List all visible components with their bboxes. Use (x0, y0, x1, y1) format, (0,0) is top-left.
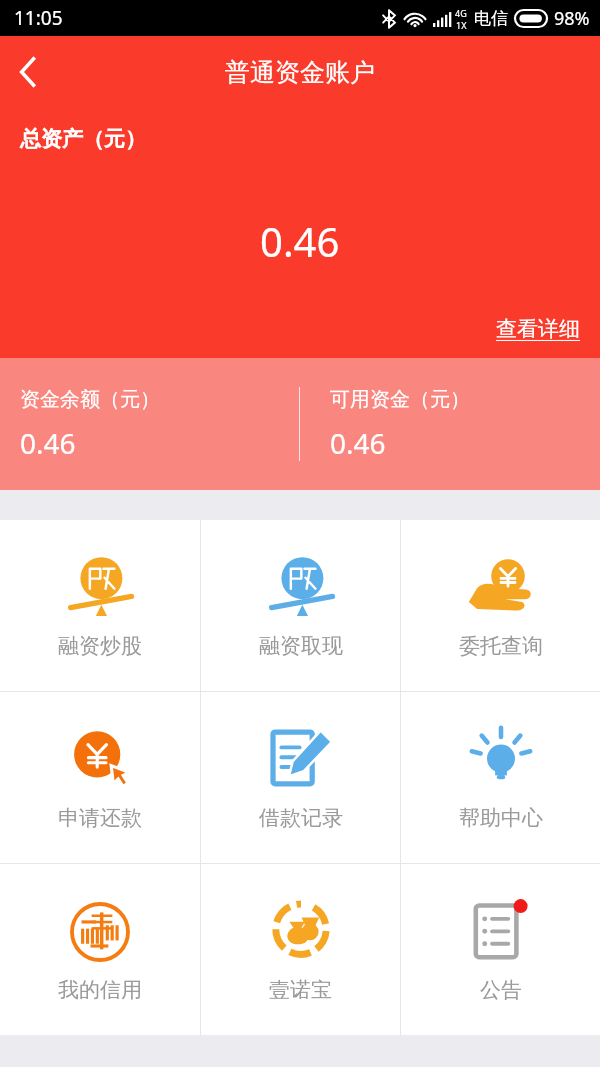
staticText: 我的信用 (58, 977, 142, 1003)
button[interactable]: Back (0, 44, 56, 100)
staticText: 0.46 (260, 214, 340, 268)
button[interactable]: 借款记录 (201, 692, 400, 863)
staticText: 0.46 (330, 424, 386, 462)
staticText: 总资产（元） (20, 126, 146, 152)
button[interactable]: 申请还款 (0, 692, 200, 863)
button[interactable]: 委托查询 (401, 520, 600, 691)
button[interactable]: 公告 (401, 864, 600, 1035)
staticText: 融资取现 (259, 633, 343, 659)
staticText: 1X (456, 19, 467, 31)
staticText: 帮助中心 (459, 805, 543, 831)
staticText: 融资炒股 (58, 633, 142, 659)
staticText: 壹诺宝 (269, 977, 332, 1003)
button[interactable]: 查看详细 (490, 310, 586, 348)
staticText: 0.46 (20, 424, 76, 462)
button[interactable]: 帮助中心 (401, 692, 600, 863)
button[interactable]: 壹诺宝 (201, 864, 400, 1035)
button[interactable]: 融资取现 (201, 520, 400, 691)
staticText: 可用资金（元） (330, 387, 470, 412)
staticText: 电信 (474, 8, 508, 29)
staticText: 11:05 (14, 5, 63, 31)
staticText: 公告 (480, 977, 522, 1003)
button[interactable]: 融资炒股 (0, 520, 200, 691)
staticText: 资金余额（元） (20, 387, 160, 412)
staticText: 借款记录 (259, 805, 343, 831)
staticText: 98% (554, 6, 590, 31)
staticText: 4G (455, 7, 467, 19)
staticText: 申请还款 (58, 805, 142, 831)
button[interactable]: 我的信用 (0, 864, 200, 1035)
staticText: 查看详细 (496, 316, 580, 342)
staticText: 普通资金账户 (225, 57, 375, 88)
staticText: 委托查询 (459, 633, 543, 659)
